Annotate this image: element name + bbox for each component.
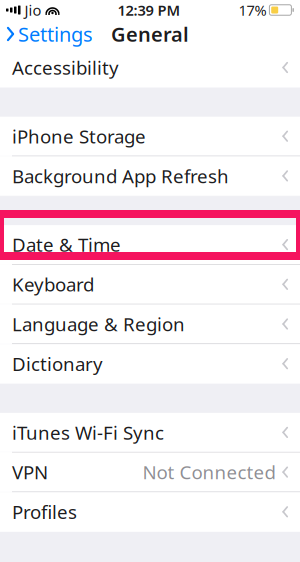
staticText: General	[111, 21, 189, 47]
staticText: iTunes Wi-Fi Sync	[12, 420, 164, 445]
staticText: Settings	[18, 21, 93, 47]
staticText: 17%	[238, 0, 266, 20]
staticText: Jio	[24, 0, 41, 20]
staticText: Profiles	[12, 499, 77, 524]
button[interactable]: Settings	[0, 17, 93, 51]
button[interactable]: iTunes Wi-Fi Sync	[0, 413, 300, 453]
button[interactable]: Background App Refresh	[0, 156, 300, 196]
staticText: Dictionary	[12, 351, 103, 376]
staticText: Background App Refresh	[12, 163, 229, 188]
button[interactable]: Language & Region	[0, 304, 300, 344]
button[interactable]: VPN	[0, 453, 300, 492]
staticText: iPhone Storage	[12, 124, 146, 149]
staticText: 12:39 PM	[117, 0, 180, 20]
button[interactable]: Profiles	[0, 492, 300, 532]
staticText: VPN	[12, 460, 48, 484]
staticText: Not Connected	[142, 460, 275, 484]
button[interactable]: Date & Time	[0, 225, 300, 265]
staticText: Accessibility	[12, 55, 119, 80]
staticText: Keyboard	[12, 272, 94, 297]
button[interactable]: Accessibility	[0, 48, 300, 88]
button[interactable]: iPhone Storage	[0, 117, 300, 156]
staticText: Language & Region	[12, 312, 185, 336]
button[interactable]: Keyboard	[0, 265, 300, 304]
staticText: Date & Time	[12, 232, 121, 257]
button[interactable]: Dictionary	[0, 344, 300, 384]
